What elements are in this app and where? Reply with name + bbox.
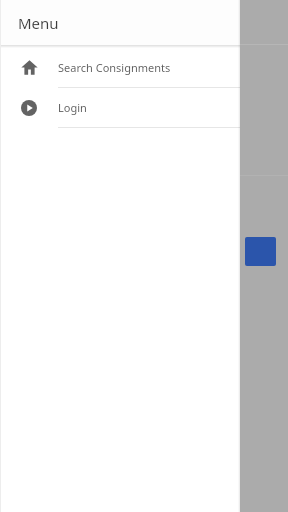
staticText: Search Consignments xyxy=(58,60,171,75)
other: Home xyxy=(21,59,38,76)
button[interactable] xyxy=(245,237,276,266)
other: Login xyxy=(21,100,37,116)
staticText: Login xyxy=(58,100,87,115)
staticText: Menu xyxy=(18,13,59,33)
button[interactable]: Login xyxy=(0,88,240,127)
button[interactable]: Home xyxy=(0,48,240,87)
